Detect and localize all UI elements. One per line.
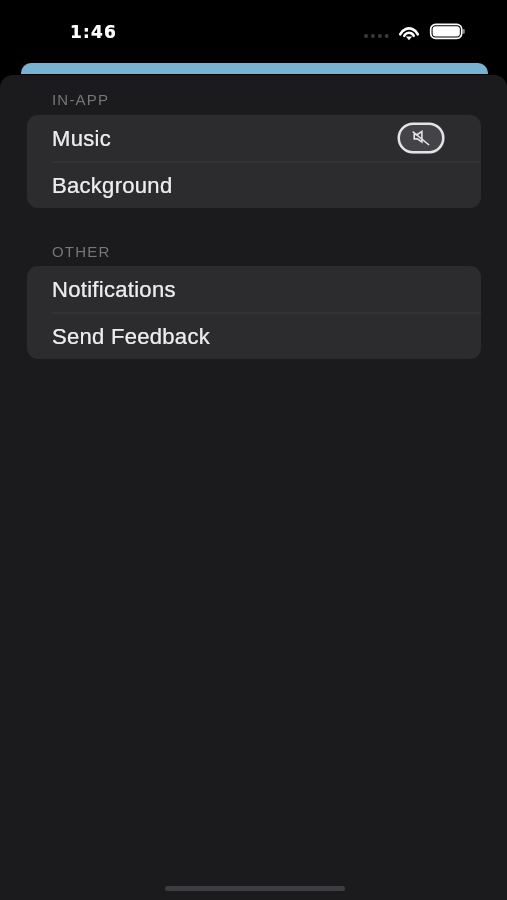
- button[interactable]: Music: [27, 115, 481, 162]
- staticText: Background: [52, 173, 173, 198]
- staticText: OTHER: [52, 243, 111, 260]
- staticText: 1:46: [70, 22, 118, 42]
- button[interactable]: Background: [27, 162, 481, 208]
- button[interactable]: Unmute: [395, 119, 447, 157]
- staticText: IN-APP: [52, 91, 110, 108]
- staticText: Notifications: [52, 277, 176, 302]
- staticText: Send Feedback: [52, 324, 211, 349]
- button[interactable]: Send Feedback: [27, 313, 481, 359]
- button[interactable]: Notifications: [27, 266, 481, 313]
- staticText: Music: [52, 126, 111, 151]
